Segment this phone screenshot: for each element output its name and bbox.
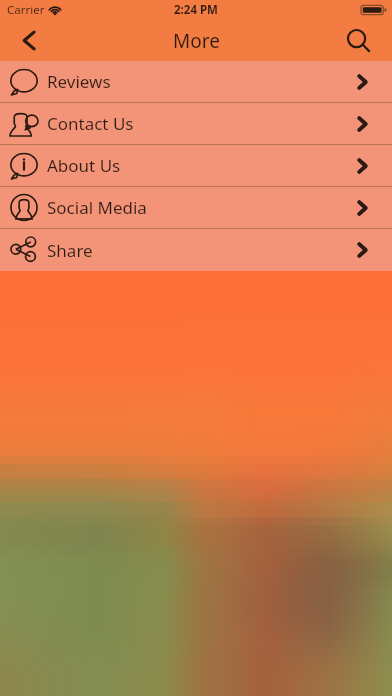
staticText: Social Media bbox=[47, 196, 147, 219]
button[interactable]: Share bbox=[0, 229, 392, 271]
button[interactable]: Back bbox=[0, 20, 56, 61]
staticText: Contact Us bbox=[47, 112, 134, 135]
staticText: About Us bbox=[47, 154, 121, 177]
staticText: More bbox=[173, 28, 220, 54]
button[interactable]: Social Media bbox=[0, 187, 392, 228]
staticText: Carrier bbox=[7, 2, 45, 18]
button[interactable]: Reviews bbox=[0, 61, 392, 102]
button[interactable]: Search bbox=[336, 20, 392, 61]
button[interactable]: About Us bbox=[0, 145, 392, 186]
button[interactable]: Contact Us bbox=[0, 103, 392, 144]
staticText: Reviews bbox=[47, 70, 111, 93]
staticText: Share bbox=[47, 239, 93, 262]
staticText: 2:24 PM bbox=[174, 2, 218, 18]
